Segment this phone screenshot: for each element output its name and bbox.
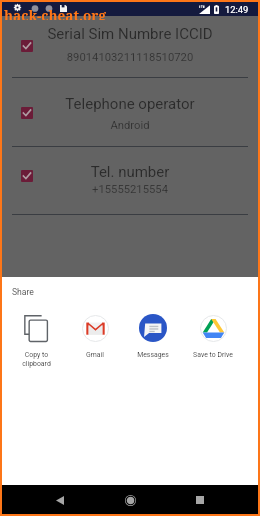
staticText: Messages [137, 351, 169, 359]
button[interactable]: Messages [124, 314, 182, 359]
button[interactable]: Copy to clipboard [7, 314, 65, 367]
button[interactable] [2, 146, 258, 214]
button[interactable] [2, 7, 258, 77]
other: Messages [139, 314, 167, 342]
other: Save to Drive [200, 315, 227, 342]
staticText: Gmail [86, 351, 104, 359]
other: Copy to clipboard [24, 315, 48, 342]
staticText: +15555215554 [2, 183, 258, 196]
button[interactable]: Back [48, 488, 72, 512]
button[interactable] [2, 77, 258, 146]
staticText: Save to Drive [193, 351, 233, 359]
staticText: hack-cheat.org [4, 6, 106, 20]
staticText: Telephone operator [2, 95, 258, 113]
button[interactable]: Save to Drive [184, 314, 242, 359]
button[interactable]: Recent apps [188, 488, 212, 512]
button[interactable]: Gmail [66, 314, 124, 359]
staticText: Copy to clipboard [22, 351, 51, 367]
other: Gmail [82, 315, 109, 342]
staticText: 12:49 [225, 4, 249, 15]
staticText: Share [12, 287, 34, 297]
button[interactable]: Home [118, 488, 142, 512]
staticText: 89014103211118510720 [2, 51, 258, 64]
staticText: Android [2, 119, 258, 132]
staticText: Tel. number [2, 163, 258, 181]
staticText: Serial Sim Numbre ICCID [2, 25, 258, 43]
